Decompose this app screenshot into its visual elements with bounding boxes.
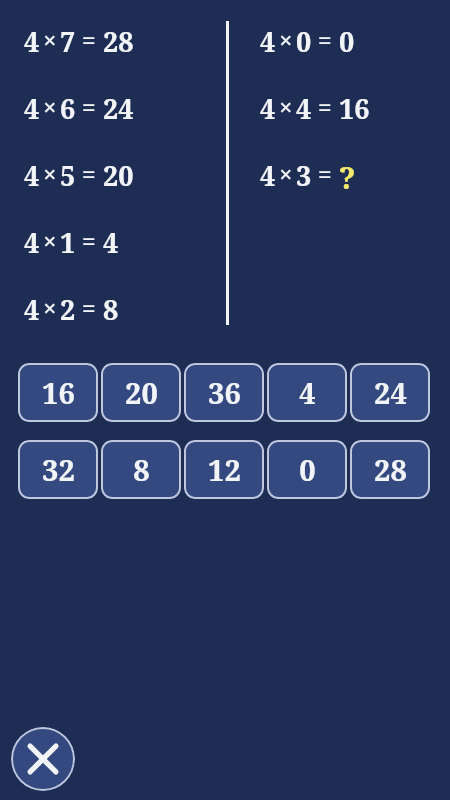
staticText: 4 [24,291,40,323]
button[interactable]: 24 [350,363,430,422]
staticText: 20 [103,157,134,189]
staticText: 12 [208,450,241,489]
staticText: 4 [296,90,312,122]
staticText: × [43,157,57,189]
staticText: = [82,90,96,122]
staticText: 4 [260,157,276,189]
staticText: × [43,90,57,122]
staticText: 1 [60,224,76,256]
staticText: 8 [103,291,119,323]
staticText: ? [339,157,356,189]
staticText: = [318,90,332,122]
staticText: 24 [374,373,407,412]
staticText: 0 [299,450,316,489]
button[interactable]: 28 [350,440,430,499]
staticText: × [279,23,293,55]
staticText: 36 [208,373,241,412]
button[interactable]: 20 [101,363,181,422]
staticText: = [82,291,96,323]
button[interactable]: 4 [267,363,347,422]
staticText: 28 [374,450,407,489]
staticText: = [318,157,332,189]
staticText: 20 [125,373,158,412]
staticText: 2 [60,291,76,323]
button[interactable]: 8 [101,440,181,499]
staticText: 6 [60,90,76,122]
staticText: 3 [296,157,312,189]
staticText: 4 [260,23,276,55]
staticText: 0 [339,23,355,55]
staticText: 5 [60,157,76,189]
staticText: 16 [42,373,75,412]
staticText: 24 [103,90,134,122]
staticText: = [318,23,332,55]
staticText: 32 [42,450,75,489]
staticText: × [279,90,293,122]
button[interactable]: 16 [18,363,98,422]
button[interactable]: 12 [184,440,264,499]
button[interactable]: 0 [267,440,347,499]
staticText: 4 [260,90,276,122]
staticText: 7 [60,23,76,55]
button[interactable]: 36 [184,363,264,422]
staticText: 8 [133,450,150,489]
staticText: = [82,224,96,256]
staticText: 4 [24,90,40,122]
staticText: 4 [24,224,40,256]
staticText: 4 [24,23,40,55]
staticText: 4 [24,157,40,189]
staticText: 4 [299,373,316,412]
staticText: × [43,23,57,55]
staticText: 4 [103,224,119,256]
staticText: = [82,157,96,189]
staticText: = [82,23,96,55]
staticText: × [43,224,57,256]
staticText: 0 [296,23,312,55]
staticText: 16 [339,90,370,122]
staticText: 28 [103,23,134,55]
button[interactable]: 32 [18,440,98,499]
staticText: × [279,157,293,189]
button[interactable]: Close [11,727,75,791]
staticText: × [43,291,57,323]
